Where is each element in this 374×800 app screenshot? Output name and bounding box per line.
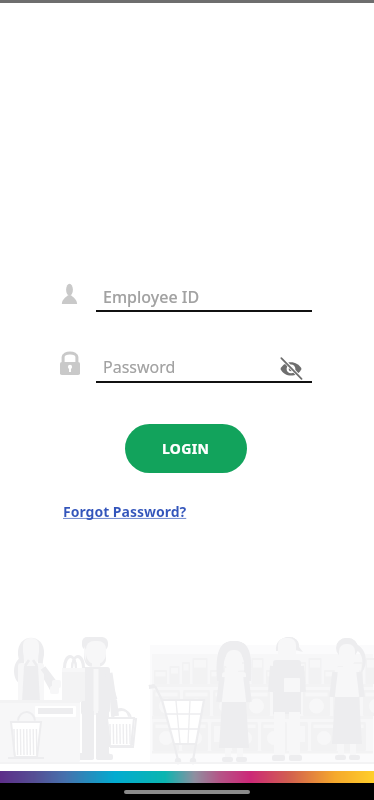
staticText: Forgot Password? [63,502,187,521]
staticText: LOGIN [162,439,210,458]
staticText: Password [103,356,176,378]
button[interactable]: Forgot Password? [63,502,187,521]
staticText: Employee ID [103,286,200,308]
button[interactable]: Show password [277,354,304,381]
button[interactable]: Password [96,353,312,383]
button[interactable]: Employee ID [96,282,312,312]
button[interactable]: LOGIN [125,424,247,473]
